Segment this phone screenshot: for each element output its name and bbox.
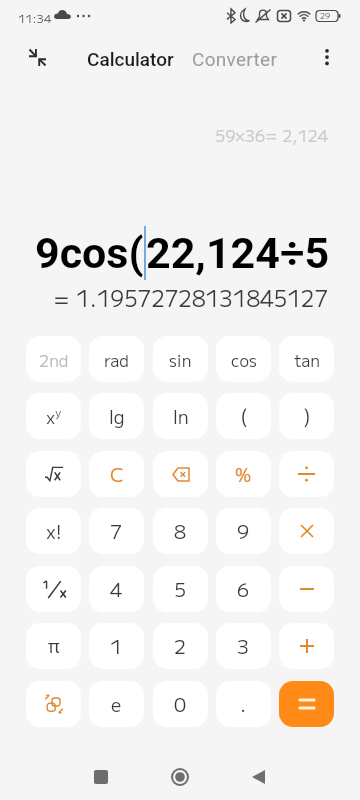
staticText: = 1.19572728131845127 bbox=[53, 282, 329, 313]
button[interactable]: tan bbox=[279, 336, 334, 382]
button[interactable]: 4 bbox=[89, 566, 144, 612]
button[interactable]: 5 bbox=[153, 566, 208, 612]
button[interactable] bbox=[26, 566, 81, 612]
button[interactable]: More options bbox=[308, 38, 346, 76]
button[interactable] bbox=[26, 451, 81, 497]
staticText: sin bbox=[169, 348, 192, 371]
button[interactable]: ( bbox=[216, 393, 271, 439]
staticText: 29 bbox=[320, 10, 331, 22]
staticText: 22,124÷5 bbox=[146, 228, 330, 278]
button[interactable]: cos bbox=[216, 336, 271, 382]
staticText: ln bbox=[173, 403, 189, 429]
button[interactable]: . bbox=[216, 681, 271, 727]
button[interactable]: Backspace bbox=[153, 451, 208, 497]
staticText: e bbox=[111, 691, 122, 717]
button[interactable]: x! bbox=[26, 508, 81, 554]
button[interactable]: Divide bbox=[279, 451, 334, 497]
staticText: 8 bbox=[174, 517, 187, 545]
staticText: Converter bbox=[192, 48, 278, 70]
button[interactable]: C bbox=[89, 451, 144, 497]
staticText: 6 bbox=[237, 575, 250, 603]
staticText: x! bbox=[46, 518, 62, 544]
button[interactable]: 0 bbox=[153, 681, 208, 727]
staticText: ( bbox=[240, 402, 248, 431]
staticText: xy bbox=[46, 404, 62, 429]
staticText: ) bbox=[303, 402, 311, 431]
button[interactable]: Recents bbox=[81, 757, 121, 797]
staticText: rad bbox=[104, 348, 129, 371]
button[interactable]: Collapse bbox=[18, 38, 56, 76]
button[interactable]: Home bbox=[160, 757, 200, 797]
button[interactable]: Plus bbox=[279, 623, 334, 669]
button[interactable]: xy bbox=[26, 393, 81, 439]
staticText: 1 bbox=[110, 632, 123, 660]
staticText: cos bbox=[231, 348, 257, 371]
button[interactable]: % bbox=[216, 451, 271, 497]
button[interactable]: ) bbox=[279, 393, 334, 439]
button[interactable]: sin bbox=[153, 336, 208, 382]
staticText: C bbox=[110, 460, 124, 488]
button[interactable]: 2nd bbox=[26, 336, 81, 382]
staticText: 4 bbox=[110, 575, 123, 603]
button[interactable]: Back bbox=[238, 757, 278, 797]
button[interactable]: 1 bbox=[89, 623, 144, 669]
staticText: 5 bbox=[174, 575, 187, 603]
button[interactable]: e bbox=[89, 681, 144, 727]
staticText: . bbox=[240, 690, 247, 718]
staticText: tan bbox=[294, 348, 320, 371]
button[interactable]: 6 bbox=[216, 566, 271, 612]
staticText: lg bbox=[109, 403, 125, 429]
button[interactable]: 8 bbox=[153, 508, 208, 554]
staticText: Calculator bbox=[87, 48, 174, 70]
button[interactable]: 9 bbox=[216, 508, 271, 554]
button[interactable]: π bbox=[26, 623, 81, 669]
staticText: 9cos( bbox=[35, 228, 144, 278]
staticText: 7 bbox=[110, 517, 123, 545]
button[interactable]: ln bbox=[153, 393, 208, 439]
button[interactable]: 2 bbox=[153, 623, 208, 669]
button[interactable]: lg bbox=[89, 393, 144, 439]
staticText: % bbox=[235, 461, 252, 487]
button[interactable]: 3 bbox=[216, 623, 271, 669]
button[interactable]: Converter bbox=[185, 42, 285, 76]
button[interactable]: rad bbox=[89, 336, 144, 382]
staticText: 2nd bbox=[39, 348, 69, 371]
staticText: π bbox=[48, 634, 60, 659]
button[interactable]: Minus bbox=[279, 566, 334, 612]
staticText: 0 bbox=[174, 690, 187, 718]
button[interactable]: Multiply bbox=[279, 508, 334, 554]
staticText: 2 bbox=[174, 632, 187, 660]
staticText: 59×36= 2,124 bbox=[215, 123, 328, 146]
button[interactable]: Unit converter bbox=[26, 681, 81, 727]
staticText: 9 bbox=[237, 517, 250, 545]
button[interactable]: 7 bbox=[89, 508, 144, 554]
button[interactable]: Equals bbox=[279, 681, 334, 727]
staticText: 3 bbox=[237, 632, 250, 660]
button[interactable]: Calculator bbox=[80, 42, 181, 76]
staticText: 11:34 bbox=[18, 10, 52, 27]
